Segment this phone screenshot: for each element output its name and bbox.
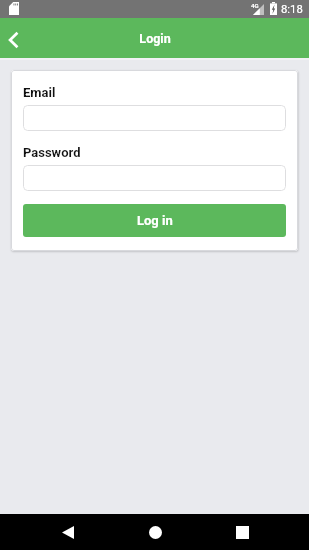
button[interactable]: Recent apps — [222, 514, 262, 550]
button[interactable]: Navigate up — [0, 18, 30, 58]
button[interactable] — [23, 105, 286, 131]
staticText: Log in — [137, 213, 173, 228]
button[interactable] — [23, 165, 286, 191]
staticText: Password — [23, 145, 81, 160]
staticText: Login — [139, 31, 171, 46]
staticText: 8:18 — [281, 3, 303, 16]
staticText: 4G — [251, 2, 259, 9]
button[interactable]: Back — [48, 514, 88, 550]
button[interactable]: Log in — [23, 204, 286, 237]
staticText: Email — [23, 85, 56, 100]
button[interactable]: Home — [135, 514, 175, 550]
